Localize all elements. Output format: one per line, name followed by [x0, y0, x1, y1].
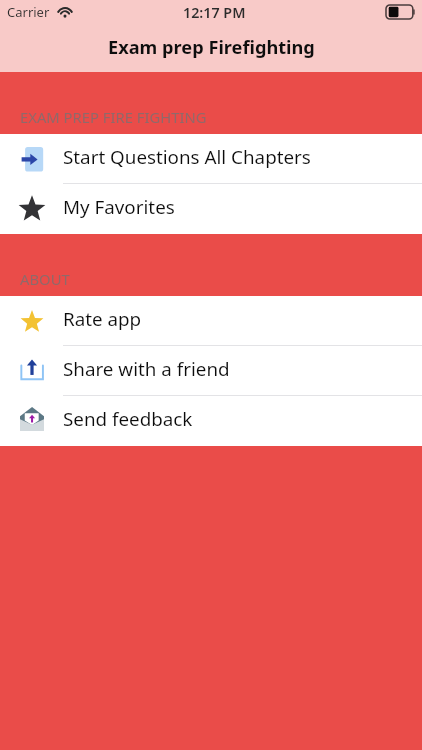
- staticText: Exam prep Firefighting: [108, 35, 315, 60]
- staticText: EXAM PREP FIRE FIGHTING: [20, 107, 207, 127]
- staticText: Share with a friend: [63, 356, 230, 382]
- staticText: Carrier: [7, 3, 50, 21]
- other: Star: [20, 309, 44, 333]
- button[interactable]: Start questions: [0, 134, 422, 184]
- other: Star: [18, 194, 46, 222]
- staticText: Rate app: [63, 306, 142, 332]
- button[interactable]: Star: [0, 296, 422, 346]
- other: Send feedback: [20, 407, 44, 431]
- staticText: My Favorites: [63, 194, 175, 220]
- staticText: Send feedback: [63, 406, 193, 432]
- staticText: ABOUT: [20, 269, 70, 289]
- other: Share: [19, 357, 45, 383]
- button[interactable]: Share: [0, 346, 422, 396]
- other: Start questions: [19, 146, 45, 172]
- staticText: Start Questions All Chapters: [63, 144, 311, 170]
- button[interactable]: Star: [0, 184, 422, 234]
- staticText: 12:17 PM: [183, 3, 246, 22]
- button[interactable]: Send feedback: [0, 396, 422, 446]
- other: Battery: [386, 5, 415, 19]
- other: Wi-Fi signal: [57, 6, 73, 17]
